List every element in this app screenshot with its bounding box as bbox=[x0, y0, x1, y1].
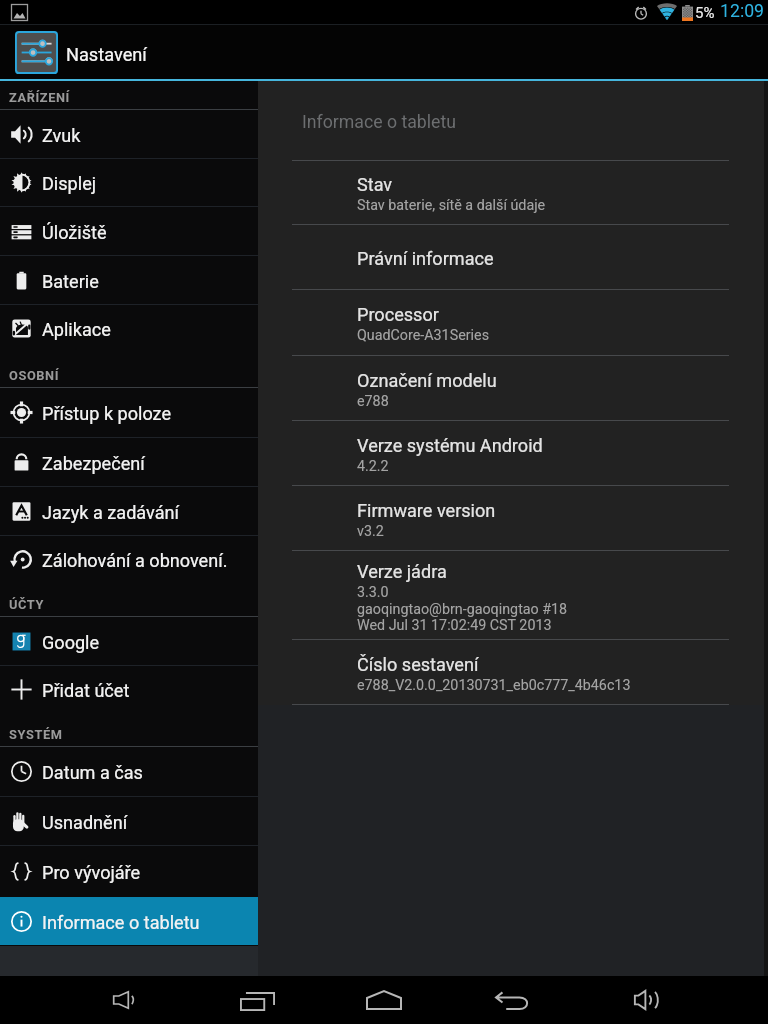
staticText: Zabezpečení bbox=[42, 453, 145, 474]
staticText: Verze jádra bbox=[357, 561, 447, 582]
button[interactable]: Stav bbox=[258, 161, 768, 224]
staticText: Číslo sestavení bbox=[357, 654, 479, 675]
button[interactable]: Přidat účet bbox=[0, 666, 258, 713]
staticText: Zvuk bbox=[42, 125, 81, 146]
staticText: Nastavení bbox=[66, 44, 147, 65]
button[interactable]: Back bbox=[480, 977, 544, 1024]
button[interactable]: Zabezpečení bbox=[0, 438, 258, 486]
staticText: Datum a čas bbox=[42, 762, 143, 783]
staticText: Google bbox=[42, 632, 100, 653]
staticText: v3.2 bbox=[357, 523, 384, 540]
staticText: Úložiště bbox=[42, 222, 107, 243]
staticText: Firmware version bbox=[357, 500, 496, 521]
button[interactable]: Číslo sestavení bbox=[258, 640, 768, 704]
staticText: Zálohování a obnovení. bbox=[42, 550, 228, 571]
staticText: SYSTÉM bbox=[9, 727, 63, 742]
staticText: 3.3.0 gaoqingtao@brn-gaoqingtao #18 Wed … bbox=[357, 584, 568, 633]
button[interactable]: Označení modelu bbox=[258, 356, 768, 420]
button[interactable]: Processor bbox=[258, 290, 768, 355]
button[interactable]: Zálohování a obnovení. bbox=[0, 536, 258, 583]
button[interactable]: Volume down bbox=[90, 976, 154, 1024]
button[interactable]: Pro vývojáře bbox=[0, 846, 258, 896]
staticText: OSOBNÍ bbox=[9, 368, 60, 383]
staticText: Usnadnění bbox=[42, 812, 128, 833]
staticText: Informace o tabletu bbox=[42, 912, 200, 933]
button[interactable]: Home bbox=[352, 976, 416, 1024]
staticText: Verze systému Android bbox=[357, 435, 543, 456]
staticText: Pro vývojáře bbox=[42, 862, 141, 883]
button[interactable]: Volume up bbox=[612, 976, 676, 1024]
button[interactable]: Recent apps bbox=[225, 977, 289, 1024]
staticText: Informace o tabletu bbox=[302, 112, 456, 133]
staticText: Přidat účet bbox=[42, 680, 130, 701]
staticText: Přístup k poloze bbox=[42, 403, 172, 424]
button[interactable]: Jazyk a zadávání bbox=[0, 487, 258, 535]
staticText: e788 bbox=[357, 393, 389, 410]
button[interactable]: Google bbox=[0, 617, 258, 665]
staticText: 12:09 bbox=[720, 1, 765, 22]
button[interactable]: Firmware version bbox=[258, 486, 768, 550]
staticText: e788_V2.0.0_20130731_eb0c777_4b46c13 bbox=[357, 677, 631, 694]
button[interactable]: Verze systému Android bbox=[258, 421, 768, 485]
button[interactable]: Displej bbox=[0, 159, 258, 206]
staticText: 4.2.2 bbox=[357, 458, 389, 475]
staticText: ZAŘÍZENÍ bbox=[9, 90, 70, 105]
staticText: Právní informace bbox=[357, 248, 494, 269]
staticText: 5% bbox=[695, 4, 715, 22]
button[interactable]: Baterie bbox=[0, 256, 258, 304]
staticText: Stav baterie, sítě a další údaje bbox=[357, 197, 546, 214]
button[interactable]: Právní informace bbox=[258, 225, 768, 289]
button[interactable]: Přístup k poloze bbox=[0, 388, 258, 437]
button[interactable]: Úložiště bbox=[0, 207, 258, 255]
staticText: Aplikace bbox=[42, 319, 111, 340]
staticText: Označení modelu bbox=[357, 370, 497, 391]
staticText: Processor bbox=[357, 304, 439, 325]
button[interactable]: Verze jádra bbox=[258, 551, 768, 639]
staticText: QuadCore-A31Series bbox=[357, 327, 490, 344]
button[interactable]: Aplikace bbox=[0, 305, 258, 352]
button[interactable]: Usnadnění bbox=[0, 797, 258, 845]
staticText: ÚČTY bbox=[9, 597, 44, 612]
staticText: Stav bbox=[357, 174, 393, 195]
button[interactable]: Datum a čas bbox=[0, 747, 258, 796]
button[interactable]: Nastavení bbox=[0, 25, 768, 81]
staticText: Displej bbox=[42, 173, 97, 194]
staticText: Baterie bbox=[42, 271, 99, 292]
staticText: Jazyk a zadávání bbox=[42, 502, 180, 523]
button[interactable]: Zvuk bbox=[0, 110, 258, 158]
button[interactable]: Informace o tabletu bbox=[0, 897, 258, 945]
